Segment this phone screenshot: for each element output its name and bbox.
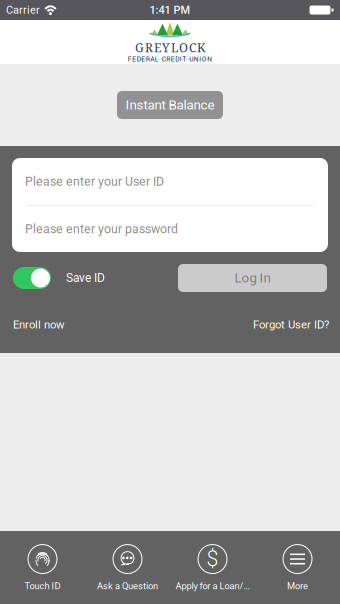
staticText: Apply for a Loan/... [175,580,249,591]
staticText: 1:41 PM [149,4,190,16]
button[interactable]: Apply for a Loan/... [170,531,255,604]
button[interactable]: Instant Balance [117,91,223,119]
button[interactable]: Forgot User ID? [253,318,329,331]
button[interactable]: Enroll now [13,318,65,331]
button[interactable]: Touch ID [0,531,85,604]
staticText: GREYLOCK [135,39,205,56]
button[interactable]: Ask a Question [85,531,170,604]
staticText: Ask a Question [97,580,158,591]
staticText: Carrier [6,4,40,16]
button[interactable]: Save ID [13,267,105,289]
staticText: FEDERAL CREDIT UNION [128,55,212,63]
staticText: $ [206,546,218,571]
staticText: Forgot User ID? [253,318,329,331]
button[interactable]: More [255,531,340,604]
button[interactable]: Log In [178,264,327,292]
staticText: Instant Balance [125,97,214,113]
staticText: Please enter your User ID [25,174,164,189]
staticText: Log In [234,270,270,286]
staticText: Please enter your password [25,222,178,236]
staticText: Touch ID [24,580,60,591]
staticText: More [287,580,308,591]
staticText: Enroll now [13,318,65,331]
staticText: Save ID [66,271,105,285]
